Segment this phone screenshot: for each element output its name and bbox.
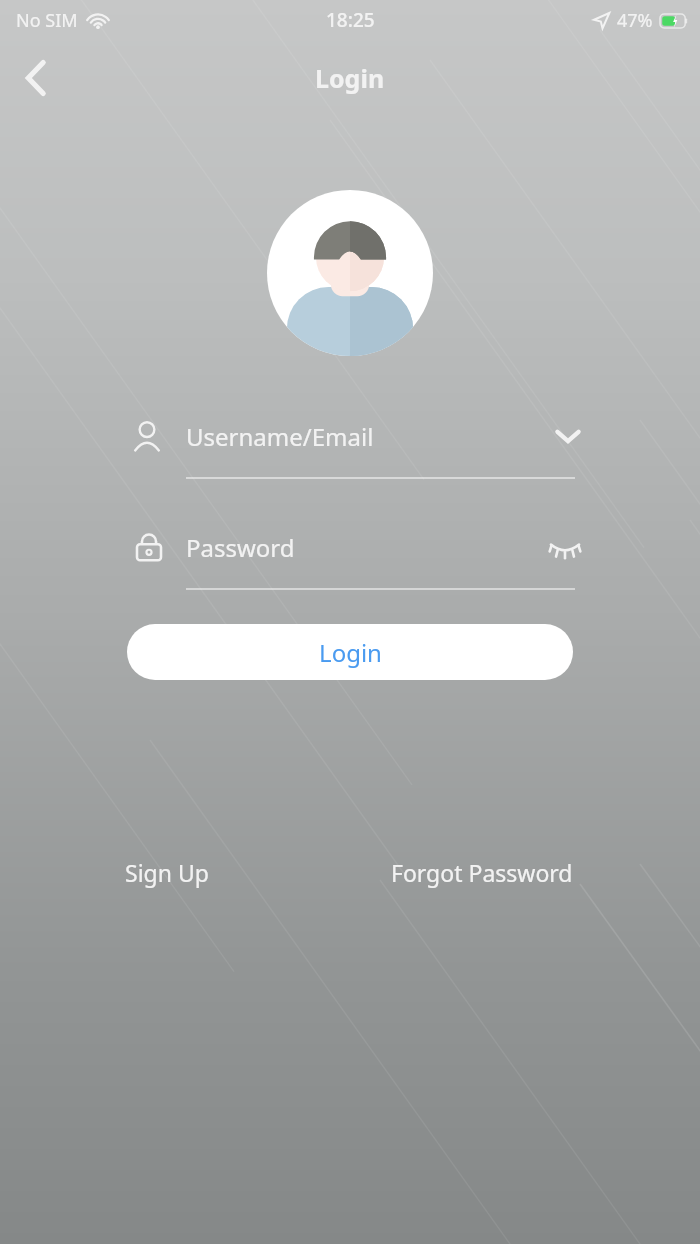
button[interactable]: Password — [0, 515, 700, 593]
staticText: 18:25 — [326, 7, 375, 33]
staticText: No SIM — [16, 8, 78, 33]
button[interactable]: Username/Email — [0, 404, 700, 482]
button[interactable]: Show password — [541, 523, 589, 571]
staticText: Forgot Password — [391, 857, 573, 888]
button[interactable]: Sign Up — [111, 849, 223, 896]
button[interactable]: Show saved accounts — [544, 412, 592, 460]
button[interactable]: Forgot Password — [377, 849, 587, 896]
staticText: Login — [319, 636, 382, 669]
staticText: Sign Up — [125, 857, 209, 888]
button[interactable]: Back — [8, 50, 64, 106]
staticText: Username/Email — [186, 420, 374, 453]
staticText: 47% — [617, 8, 653, 33]
staticText: Login — [315, 61, 385, 95]
staticText: Password — [186, 531, 295, 564]
button[interactable]: Login — [127, 624, 573, 680]
